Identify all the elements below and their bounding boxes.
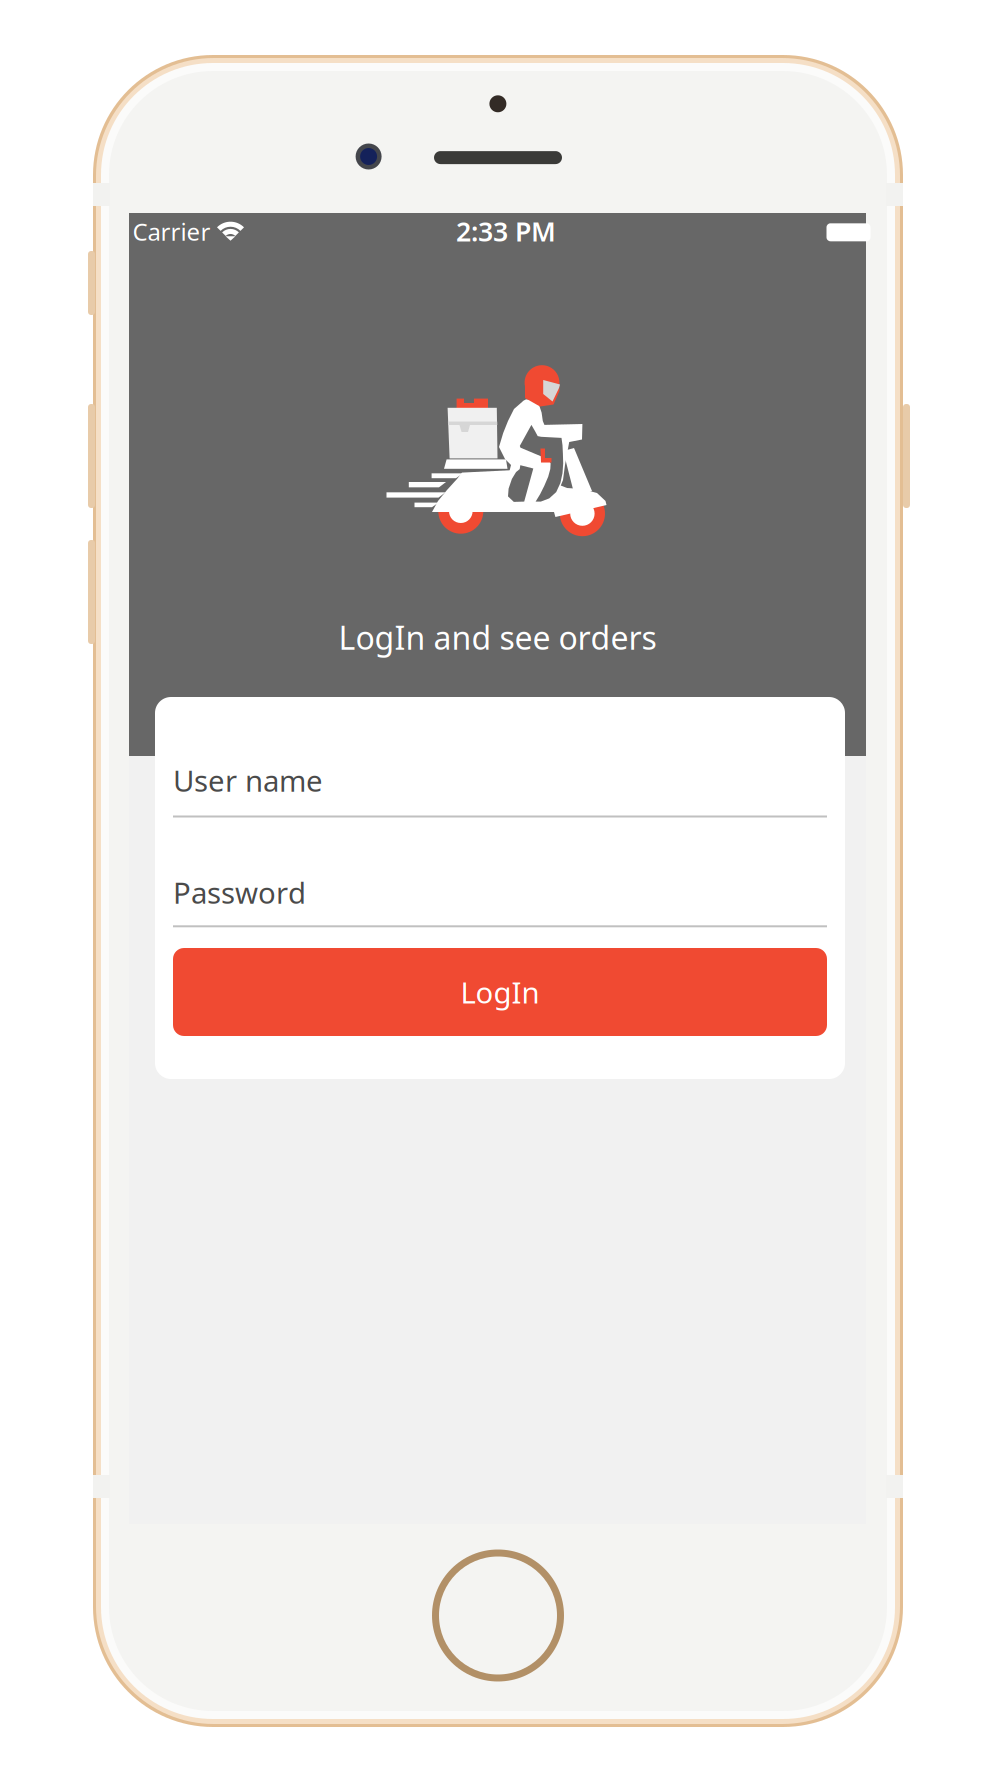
staticText: LogIn and see orders bbox=[338, 616, 656, 658]
staticText: User name bbox=[173, 761, 323, 800]
staticText: LogIn bbox=[460, 972, 539, 1011]
staticText: Password bbox=[173, 873, 306, 912]
button[interactable]: LogIn bbox=[173, 948, 827, 1036]
staticText: Carrier bbox=[132, 215, 210, 247]
staticText: 2:33 PM bbox=[456, 213, 556, 249]
